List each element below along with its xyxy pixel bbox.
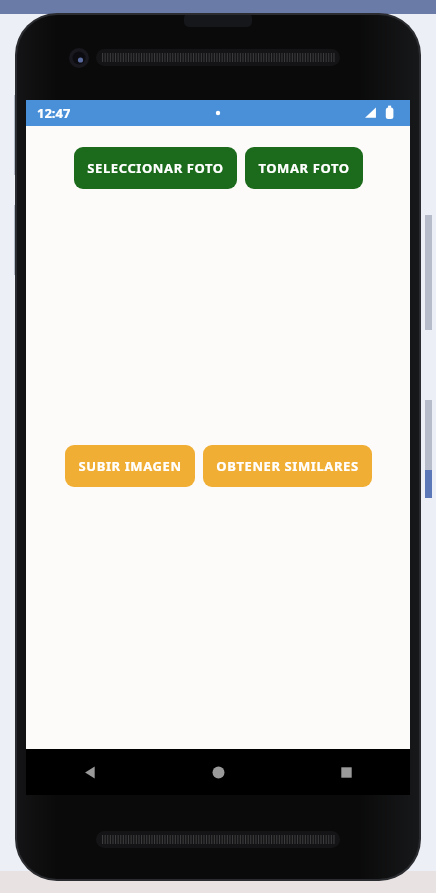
staticText: OBTENER SIMILARES bbox=[216, 457, 359, 475]
button[interactable]: SELECCIONAR FOTO bbox=[74, 147, 237, 189]
staticText: TOMAR FOTO bbox=[258, 159, 350, 177]
button[interactable]: OBTENER SIMILARES bbox=[203, 445, 372, 487]
staticText: SUBIR IMAGEN bbox=[78, 457, 182, 475]
button[interactable]: SUBIR IMAGEN bbox=[65, 445, 195, 487]
button[interactable]: TOMAR FOTO bbox=[245, 147, 363, 189]
button[interactable]: Recent apps bbox=[282, 749, 410, 795]
button[interactable]: Back bbox=[26, 749, 154, 795]
staticText: 12:47 bbox=[37, 104, 71, 122]
staticText: SELECCIONAR FOTO bbox=[87, 159, 224, 177]
button[interactable]: Home bbox=[154, 749, 282, 795]
